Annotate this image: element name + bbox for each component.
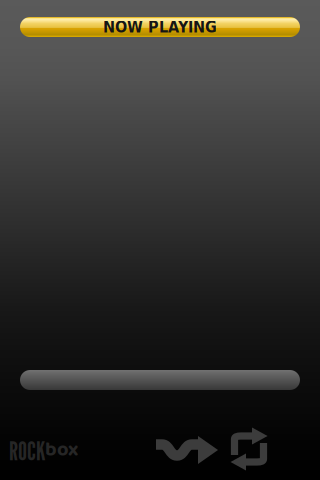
button[interactable]: NOW PLAYING: [20, 17, 300, 37]
staticText: NOW PLAYING: [103, 18, 217, 36]
button[interactable]: Repeat: [230, 427, 268, 471]
button[interactable]: Shuffle: [155, 435, 219, 465]
button[interactable]: Playback position: [20, 370, 300, 390]
staticText: ROCK: [9, 436, 45, 466]
staticText: box: [45, 434, 78, 466]
